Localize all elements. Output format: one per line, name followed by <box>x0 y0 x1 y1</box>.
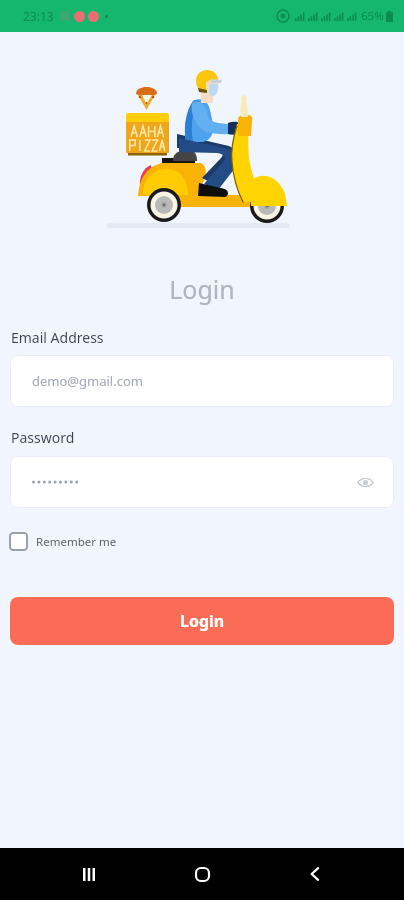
staticText: Remember me <box>36 534 117 550</box>
staticText: demo@gmail.com <box>32 372 143 390</box>
staticText: 65% <box>361 8 384 24</box>
button[interactable]: Remember me <box>9 532 117 551</box>
staticText: Email Address <box>11 328 104 347</box>
staticText: Login <box>180 610 225 632</box>
button[interactable]: Back <box>291 850 339 898</box>
staticText: Password <box>11 428 75 447</box>
button[interactable]: Login <box>10 597 394 645</box>
staticText: Login <box>169 272 235 306</box>
button[interactable]: Show password <box>352 469 378 495</box>
button[interactable]: Show password <box>10 456 394 508</box>
staticText: 23:13 <box>23 8 54 24</box>
button[interactable]: Home <box>178 850 226 898</box>
button[interactable]: Recent apps <box>65 850 113 898</box>
button[interactable]: demo@gmail.com <box>10 355 394 407</box>
